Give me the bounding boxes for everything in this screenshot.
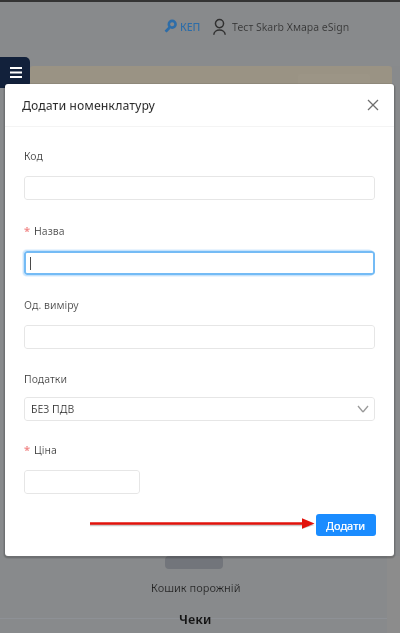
staticText: Од. виміру [24,298,79,312]
staticText: Чеки [179,611,212,628]
staticText: * [24,223,31,238]
staticText: БЕЗ ПДВ [31,402,75,416]
staticText: Код [24,149,43,163]
button[interactable] [24,470,140,494]
staticText: КЕП [180,20,201,34]
button[interactable] [24,325,375,349]
staticText: Кошик порожній [151,580,241,595]
staticText: Тест Skarb Хмара eSign [232,20,350,34]
staticText: * [24,442,31,457]
button[interactable]: Close [361,93,385,117]
button[interactable]: Додати [316,514,376,536]
button[interactable] [24,176,375,200]
staticText: Назва [34,224,65,238]
button[interactable]: БЕЗ ПДВ [24,397,375,421]
staticText: Додати [326,518,366,533]
button[interactable] [24,251,375,275]
staticText: Додати номенклатуру [22,97,156,114]
staticText: Податки [24,372,67,386]
staticText: Ціна [34,443,57,457]
button[interactable]: Menu [0,57,30,88]
